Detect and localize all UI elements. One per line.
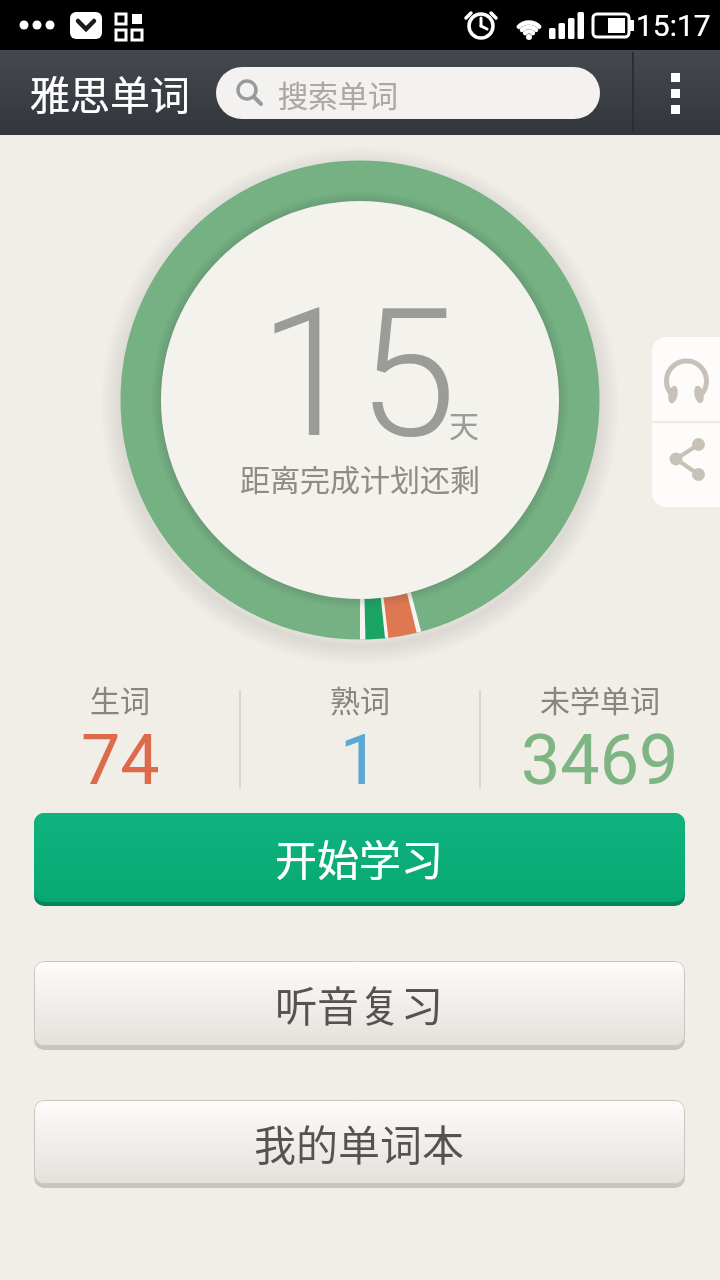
button[interactable]: 开始学习 [34, 813, 685, 906]
button[interactable] [652, 337, 720, 422]
staticText: 1 [340, 719, 380, 801]
button[interactable]: 搜索单词 [216, 67, 600, 119]
button[interactable]: 我的单词本 [34, 1100, 685, 1188]
staticText: 74 [81, 719, 160, 801]
staticText: 未学单词 [540, 677, 660, 720]
staticText: 生词 [90, 677, 150, 720]
staticText: 3469 [521, 719, 679, 801]
staticText: 听音复习 [275, 973, 444, 1034]
staticText: 15 [259, 270, 457, 479]
button[interactable] [646, 50, 706, 135]
staticText: 熟词 [330, 677, 390, 720]
button[interactable]: 听音复习 [34, 961, 685, 1050]
staticText: 搜索单词 [278, 72, 398, 115]
staticText: 雅思单词 [30, 64, 190, 122]
button[interactable] [652, 422, 720, 507]
staticText: 开始学习 [275, 827, 444, 888]
staticText: 距离完成计划还剩 [240, 456, 480, 499]
staticText: 天 [449, 402, 479, 445]
staticText: 我的单词本 [254, 1112, 465, 1173]
staticText: 15:17 [636, 8, 711, 43]
